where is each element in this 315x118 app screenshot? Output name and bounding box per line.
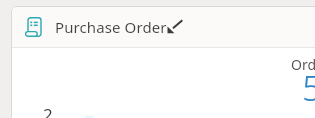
button[interactable] xyxy=(167,19,184,35)
button[interactable] xyxy=(11,6,315,47)
staticText: Orders xyxy=(291,55,315,74)
staticText: 57 xyxy=(302,64,315,112)
staticText: Purchase Order xyxy=(55,17,167,37)
staticText: 2 xyxy=(43,103,53,118)
